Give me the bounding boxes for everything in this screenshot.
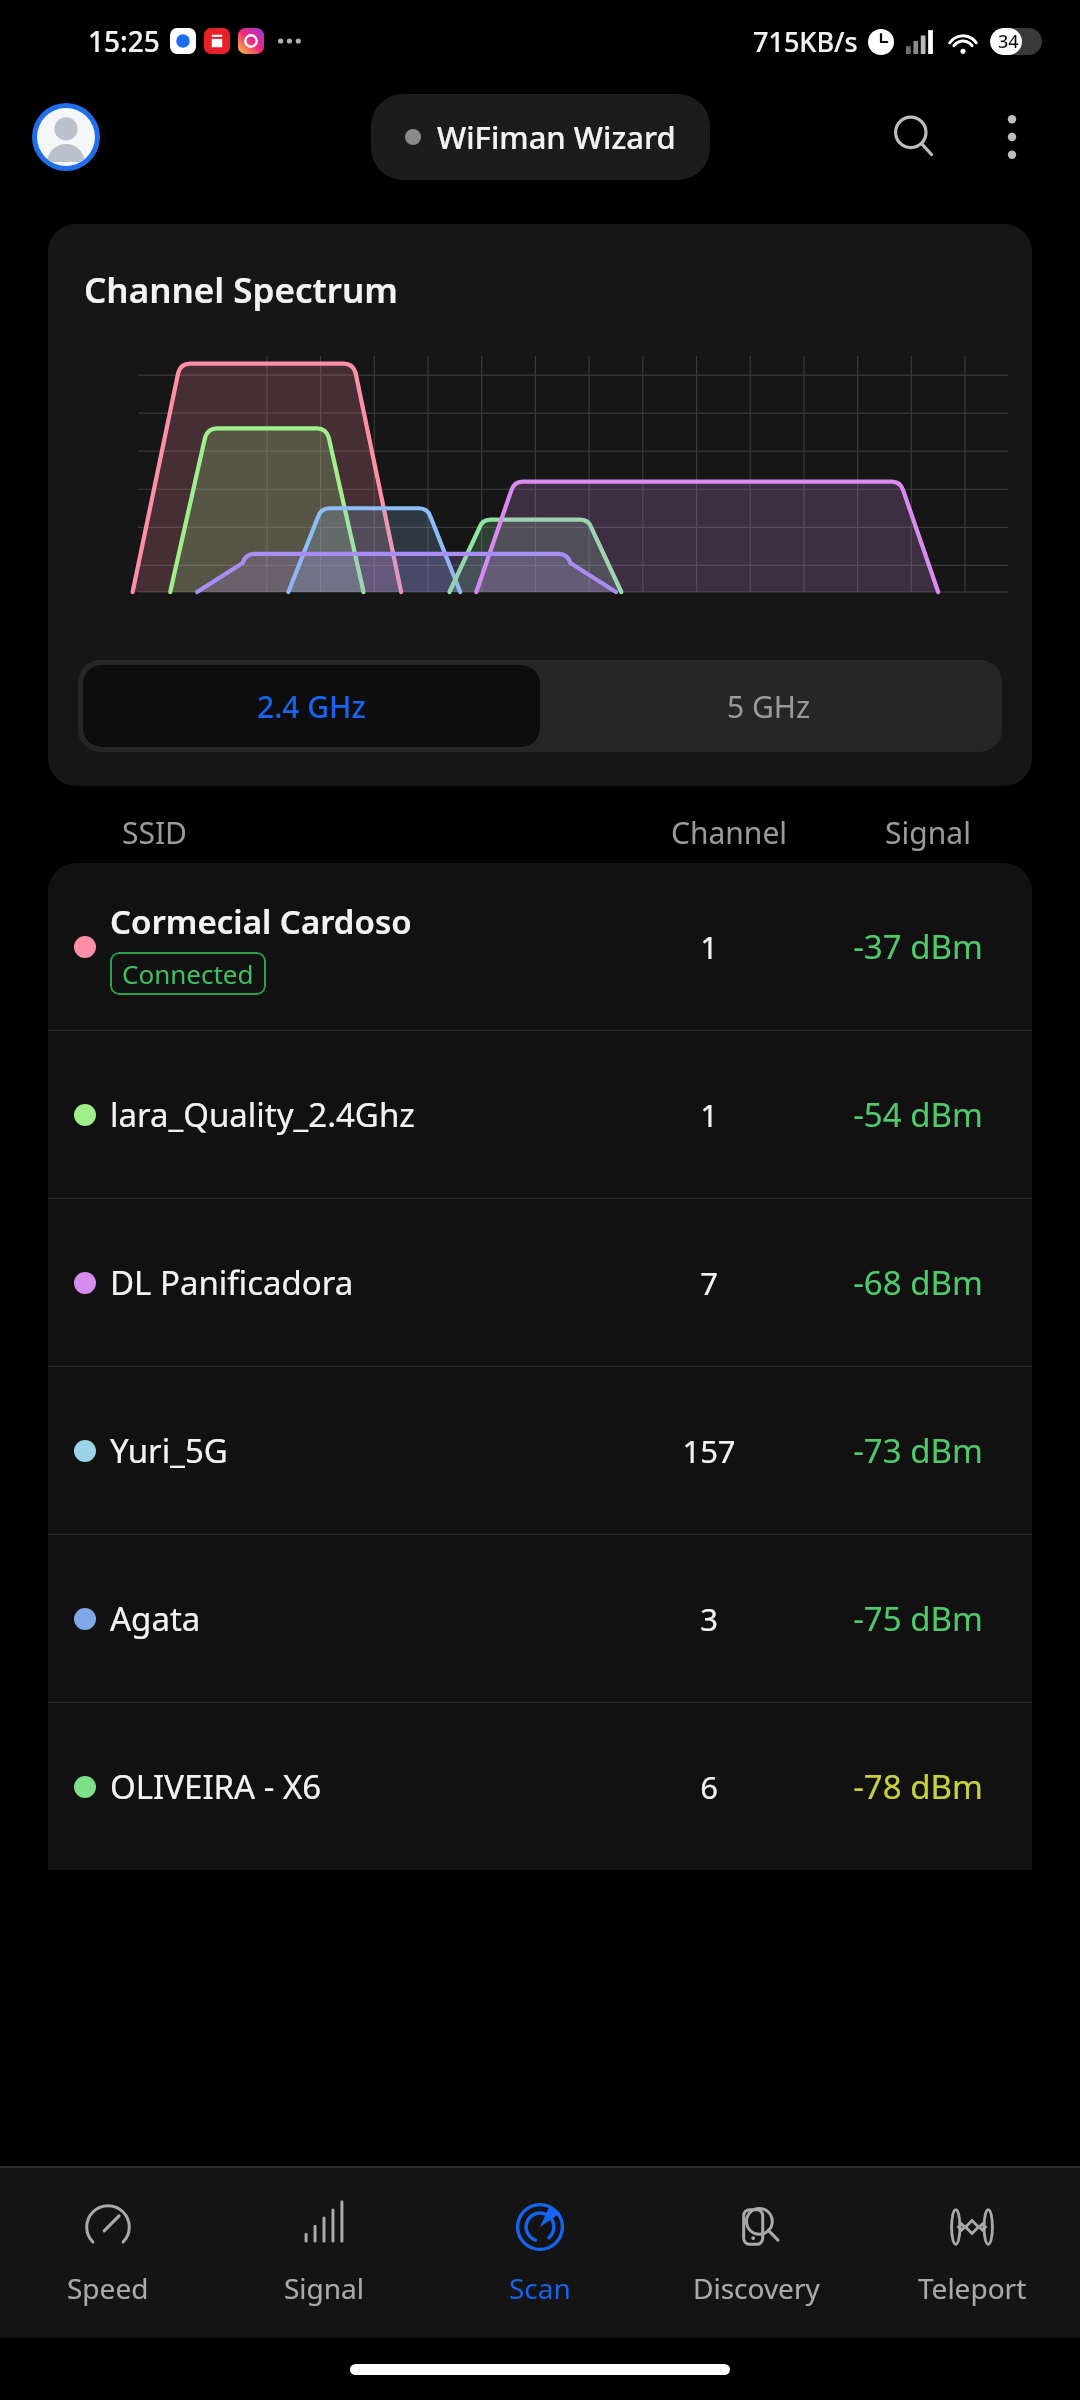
- staticText: 7: [624, 1262, 794, 1304]
- button[interactable]: OLIVEIRA - X6: [48, 1703, 1032, 1870]
- staticText: Yuri_5G: [110, 1428, 228, 1473]
- staticText: Speed: [67, 2269, 149, 2307]
- staticText: Signal: [838, 812, 1018, 853]
- button[interactable]: 5 GHz: [540, 665, 997, 747]
- staticText: -68 dBm: [818, 1260, 1018, 1305]
- button[interactable]: More options: [978, 103, 1046, 171]
- button[interactable]: lara_Quality_2.4Ghz: [48, 1031, 1032, 1198]
- staticText: -73 dBm: [818, 1428, 1018, 1473]
- staticText: -37 dBm: [818, 924, 1018, 969]
- staticText: 2.4 GHz: [257, 686, 366, 727]
- staticText: Cormecial Cardoso: [110, 899, 412, 944]
- button[interactable]: Scan: [432, 2168, 648, 2338]
- staticText: Agata: [110, 1596, 201, 1641]
- staticText: SSID: [122, 812, 188, 853]
- staticText: -75 dBm: [818, 1596, 1018, 1641]
- staticText: DL Panificadora: [110, 1260, 354, 1305]
- button[interactable]: Search: [878, 101, 950, 173]
- staticText: lara_Quality_2.4Ghz: [110, 1092, 415, 1137]
- staticText: 157: [624, 1430, 794, 1472]
- staticText: 5 GHz: [727, 686, 811, 727]
- staticText: 1: [624, 1094, 794, 1136]
- button[interactable]: 2.4 GHz: [83, 665, 540, 747]
- staticText: 1: [624, 926, 794, 968]
- staticText: Signal: [284, 2269, 365, 2307]
- staticText: Teleport: [918, 2269, 1027, 2307]
- button[interactable]: Yuri_5G: [48, 1367, 1032, 1534]
- staticText: -54 dBm: [818, 1092, 1018, 1137]
- button[interactable]: Cormecial Cardoso: [48, 863, 1032, 1030]
- staticText: 15:25: [88, 22, 160, 60]
- button[interactable]: Signal: [216, 2168, 432, 2338]
- staticText: 34: [998, 29, 1019, 54]
- button[interactable]: Speed: [0, 2168, 216, 2338]
- button[interactable]: Discovery: [648, 2168, 864, 2338]
- button[interactable]: Profile: [32, 103, 100, 171]
- staticText: WiFiman Wizard: [437, 116, 676, 158]
- staticText: Channel Spectrum: [84, 266, 398, 314]
- staticText: Discovery: [693, 2269, 820, 2307]
- staticText: Connected: [122, 956, 254, 991]
- staticText: OLIVEIRA - X6: [110, 1764, 322, 1809]
- button[interactable]: DL Panificadora: [48, 1199, 1032, 1366]
- button[interactable]: WiFiman Wizard: [371, 94, 710, 180]
- button[interactable]: Teleport: [864, 2168, 1080, 2338]
- staticText: 715KB/s: [753, 23, 858, 60]
- staticText: -78 dBm: [818, 1764, 1018, 1809]
- staticText: 3: [624, 1598, 794, 1640]
- button[interactable]: Agata: [48, 1535, 1032, 1702]
- staticText: Scan: [509, 2269, 571, 2307]
- staticText: Channel: [644, 812, 814, 853]
- staticText: 6: [624, 1766, 794, 1808]
